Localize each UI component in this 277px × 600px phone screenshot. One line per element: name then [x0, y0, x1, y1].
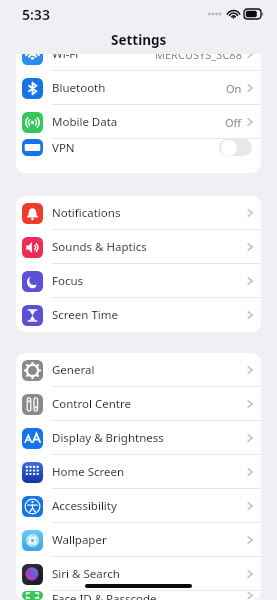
button[interactable]: Siri & Search — [16, 557, 261, 591]
button[interactable]: VPN toggle — [219, 139, 252, 156]
button[interactable]: Mobile Data — [16, 105, 261, 139]
button[interactable]: Wallpaper — [16, 523, 261, 557]
staticText: Off — [225, 115, 242, 130]
button[interactable]: Wi-Fi — [16, 54, 261, 71]
staticText: Mobile Data — [52, 114, 225, 130]
button[interactable]: VPN — [16, 139, 261, 156]
button[interactable]: Bluetooth — [16, 71, 261, 105]
staticText: Notifications — [52, 205, 247, 221]
staticText: Control Centre — [52, 396, 247, 412]
button[interactable]: Notifications — [16, 196, 261, 230]
staticText: Focus — [52, 273, 247, 289]
staticText: Face ID & Passcode — [52, 591, 247, 600]
staticText: Home Screen — [52, 464, 247, 480]
staticText: On — [226, 81, 242, 96]
button[interactable]: Accessibility — [16, 489, 261, 523]
button[interactable]: Focus — [16, 264, 261, 298]
staticText: Accessibility — [52, 498, 247, 514]
staticText: VPN — [52, 140, 219, 156]
staticText: General — [52, 362, 247, 378]
staticText: Screen Time — [52, 307, 247, 323]
staticText: Display & Brightness — [52, 430, 247, 446]
staticText: Siri & Search — [52, 566, 247, 582]
button[interactable]: Home Screen — [16, 455, 261, 489]
staticText: Settings — [111, 31, 167, 49]
button[interactable]: Screen Time — [16, 298, 261, 332]
staticText: MERCUSYS_3C88 — [155, 54, 242, 62]
button[interactable]: Face ID & Passcode — [16, 591, 261, 600]
staticText: Wi-Fi — [52, 54, 155, 62]
button[interactable]: Sounds & Haptics — [16, 230, 261, 264]
staticText: Bluetooth — [52, 80, 226, 96]
staticText: Sounds & Haptics — [52, 239, 247, 255]
button[interactable]: Control Centre — [16, 387, 261, 421]
button[interactable]: General — [16, 353, 261, 387]
button[interactable]: Display & Brightness — [16, 421, 261, 455]
staticText: 5:33 — [22, 5, 50, 24]
staticText: Wallpaper — [52, 532, 247, 548]
